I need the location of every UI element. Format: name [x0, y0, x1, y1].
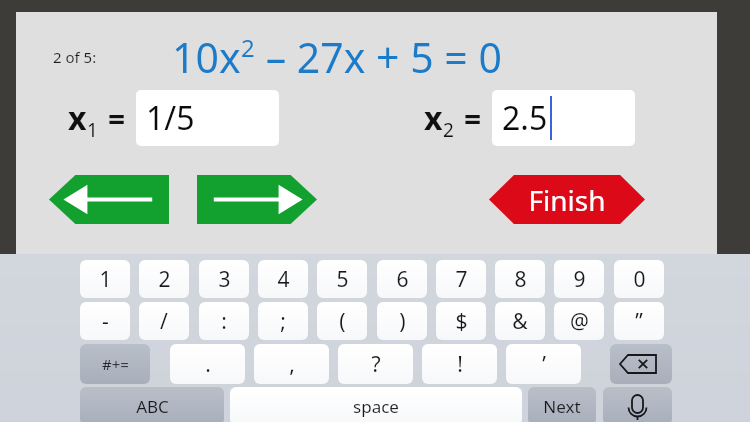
button[interactable]: #+= [80, 344, 150, 384]
button[interactable]: Previous [49, 175, 169, 224]
staticText: / [160, 307, 168, 336]
staticText: Finish [528, 181, 606, 219]
staticText: 2.5 [502, 96, 548, 140]
button[interactable]: 6 [377, 260, 427, 298]
button[interactable]: 2.5 [492, 90, 635, 146]
staticText: ABC [136, 395, 169, 418]
staticText: x [424, 96, 443, 140]
staticText: , [289, 350, 295, 379]
button[interactable]: 0 [614, 260, 664, 298]
staticText: 9 [573, 265, 586, 294]
staticText: - [102, 307, 109, 336]
staticText: 2 of 5: [53, 47, 97, 67]
staticText: 2 [443, 117, 454, 143]
staticText: 1/5 [146, 96, 195, 140]
button[interactable]: 5 [317, 260, 367, 298]
button[interactable]: , [254, 344, 329, 384]
button[interactable]: & [495, 302, 545, 340]
staticText: – 27x + 5 = 0 [255, 29, 502, 85]
button[interactable]: ) [377, 302, 427, 340]
staticText: space [353, 395, 399, 418]
staticText: 6 [396, 265, 409, 294]
button[interactable]: Next [528, 387, 596, 422]
button[interactable]: ” [614, 302, 664, 340]
staticText: 1 [99, 265, 112, 294]
button[interactable]: ; [258, 302, 308, 340]
button[interactable]: 7 [436, 260, 486, 298]
staticText: ” [635, 307, 643, 336]
button[interactable]: $ [436, 302, 486, 340]
staticText: Next [543, 395, 581, 418]
button[interactable]: 8 [495, 260, 545, 298]
staticText: @ [570, 307, 589, 336]
staticText: 4 [277, 265, 290, 294]
staticText: . [205, 350, 211, 379]
button[interactable]: ’ [506, 344, 581, 384]
staticText: x [68, 96, 87, 140]
button[interactable]: / [139, 302, 189, 340]
button[interactable]: Finish [489, 175, 645, 224]
staticText: 2 [241, 31, 255, 64]
staticText: 3 [218, 265, 231, 294]
button[interactable]: space [230, 387, 522, 422]
button[interactable]: 1 [80, 260, 130, 298]
button[interactable]: Backspace [610, 344, 672, 384]
button[interactable]: 9 [554, 260, 604, 298]
button[interactable]: Next equation [197, 175, 317, 224]
button[interactable]: @ [554, 302, 604, 340]
button[interactable]: ! [422, 344, 497, 384]
staticText: = [464, 98, 482, 139]
button[interactable]: ? [338, 344, 413, 384]
button[interactable]: 2 [139, 260, 189, 298]
button[interactable]: Voice input [603, 387, 672, 422]
staticText: ) [399, 307, 406, 336]
button[interactable]: ABC [80, 387, 224, 422]
button[interactable]: 1/5 [136, 90, 279, 146]
staticText: ? [371, 350, 381, 379]
staticText: 10x [172, 29, 241, 85]
staticText: ’ [542, 350, 546, 379]
staticText: 8 [514, 265, 527, 294]
button[interactable]: 4 [258, 260, 308, 298]
staticText: ; [280, 307, 286, 336]
staticText: 5 [336, 265, 349, 294]
staticText: ! [457, 350, 463, 379]
staticText: #+= [102, 354, 129, 374]
staticText: 7 [455, 265, 468, 294]
button[interactable]: . [170, 344, 245, 384]
staticText: $ [455, 307, 468, 336]
staticText: ( [339, 307, 346, 336]
button[interactable]: 3 [199, 260, 249, 298]
button[interactable]: ( [317, 302, 367, 340]
staticText: 2 [158, 265, 171, 294]
staticText: & [512, 307, 528, 336]
staticText: = [108, 98, 126, 139]
staticText: : [221, 307, 227, 336]
button[interactable]: : [199, 302, 249, 340]
button[interactable]: - [80, 302, 130, 340]
staticText: 0 [633, 265, 646, 294]
staticText: 1 [87, 117, 98, 143]
